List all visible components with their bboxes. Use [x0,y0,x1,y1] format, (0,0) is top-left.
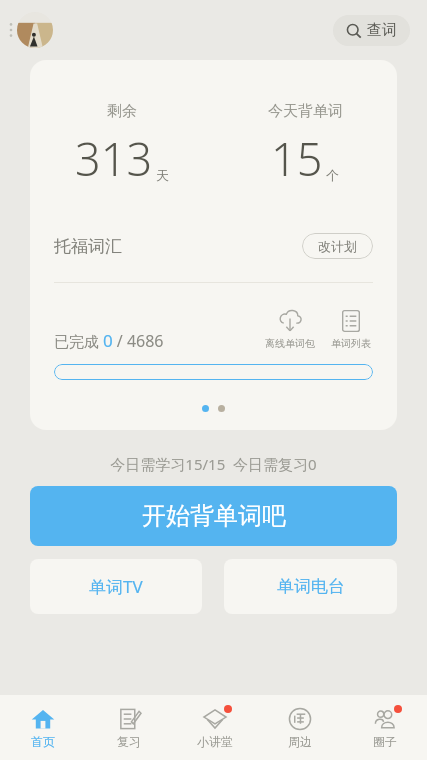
staticText: 剩余 [107,102,137,121]
staticText: 周边 [288,734,312,749]
staticText: 15 [271,128,323,189]
button[interactable]: 改计划 [302,233,373,259]
staticText: 首页 [31,734,55,749]
staticText: 个 [326,167,339,183]
staticText: 开始背单词吧 [142,501,286,531]
button[interactable]: 查词 [333,15,410,46]
button[interactable]: 开始背单词吧 [30,486,397,546]
staticText: 单词TV [89,575,143,598]
staticText: 单词列表 [331,337,371,350]
button[interactable]: 复习 [86,695,172,760]
staticText: 今天背单词 [268,102,343,121]
button[interactable]: 单词列表 [329,306,373,352]
button[interactable]: 首页 [0,695,86,760]
button[interactable]: Profile [17,12,53,48]
staticText: 改计划 [318,238,357,254]
staticText: 复习 [117,734,141,749]
staticText: 圈子 [373,734,397,749]
button[interactable]: 离线单词包 [263,306,317,352]
staticText: 小讲堂 [197,734,233,749]
button[interactable]: 单词电台 [224,559,397,614]
staticText: 离线单词包 [265,337,315,350]
staticText: 已完成 0 / 4686 [54,329,164,352]
button[interactable]: 圈子 [342,695,427,760]
staticText: 托福词汇 [54,236,122,257]
staticText: 天 [156,167,169,183]
staticText: 今日需学习15/15 今日需复习0 [110,454,317,474]
staticText: 313 [75,128,153,189]
button[interactable]: 单词TV [30,559,202,614]
staticText: 查词 [367,21,397,40]
button[interactable]: 周边 [257,695,342,760]
staticText: 单词电台 [277,576,345,597]
button[interactable]: 小讲堂 [172,695,257,760]
